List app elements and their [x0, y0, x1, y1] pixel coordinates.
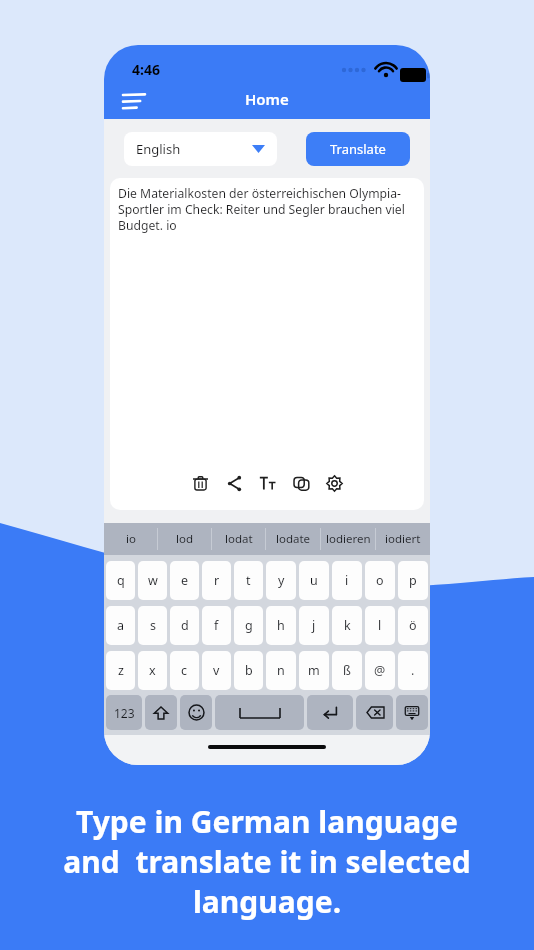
staticText: i [345, 572, 349, 589]
staticText: z [118, 662, 124, 679]
staticText: w [148, 572, 158, 589]
button[interactable]: Enter [307, 695, 353, 730]
button[interactable]: f [202, 606, 231, 645]
button[interactable]: l [365, 606, 395, 645]
staticText: 4:46 [132, 60, 160, 79]
staticText: Type in German language and translate it… [63, 801, 471, 922]
staticText: e [181, 572, 189, 589]
button[interactable]: z [106, 651, 135, 690]
button[interactable]: iodiert [376, 523, 430, 555]
button[interactable]: c [170, 651, 199, 690]
staticText: a [117, 617, 125, 634]
button[interactable]: . [398, 651, 428, 690]
button[interactable]: 123 [106, 695, 142, 730]
staticText: d [181, 617, 189, 634]
staticText: Translate [330, 140, 386, 158]
button[interactable]: Hide keyboard [396, 695, 428, 730]
button[interactable]: Translate [306, 132, 410, 166]
staticText: ö [409, 617, 417, 634]
staticText: c [181, 662, 188, 679]
staticText: ß [343, 662, 351, 679]
button[interactable]: p [398, 561, 428, 600]
staticText: p [409, 572, 417, 589]
button[interactable]: Delete [187, 470, 213, 496]
staticText: English [136, 140, 181, 158]
button[interactable]: d [170, 606, 199, 645]
button[interactable]: ö [398, 606, 428, 645]
button[interactable]: e [170, 561, 199, 600]
staticText: l [378, 617, 382, 634]
staticText: v [213, 662, 220, 679]
staticText: r [214, 572, 220, 589]
button[interactable]: Shift [145, 695, 177, 730]
button[interactable]: s [138, 606, 167, 645]
button[interactable]: Share [221, 470, 247, 496]
staticText: lodate [276, 531, 311, 547]
button[interactable]: Backspace [356, 695, 393, 730]
staticText: lodieren [326, 531, 371, 547]
button[interactable]: v [202, 651, 231, 690]
staticText: q [117, 572, 125, 589]
staticText: x [149, 662, 156, 679]
button[interactable]: i [332, 561, 362, 600]
staticText: o [376, 572, 384, 589]
button[interactable]: b [234, 651, 263, 690]
staticText: h [277, 617, 285, 634]
staticText: f [214, 617, 219, 634]
button[interactable]: o [365, 561, 395, 600]
button[interactable]: j [299, 606, 329, 645]
button[interactable]: Space [215, 695, 304, 730]
button[interactable]: English [124, 132, 277, 166]
staticText: lodat [225, 531, 253, 547]
button[interactable]: Menu [114, 85, 154, 117]
staticText: m [308, 662, 320, 679]
button[interactable]: y [266, 561, 296, 600]
staticText: g [245, 617, 253, 634]
staticText: iodiert [385, 531, 421, 547]
button[interactable]: g [234, 606, 263, 645]
button[interactable]: Emoji [180, 695, 212, 730]
staticText: @ [374, 662, 386, 679]
button[interactable]: m [299, 651, 329, 690]
button[interactable]: h [266, 606, 296, 645]
staticText: Home [245, 89, 289, 109]
staticText: n [277, 662, 285, 679]
button[interactable]: x [138, 651, 167, 690]
button[interactable]: lodate [266, 523, 320, 555]
button[interactable]: @ [365, 651, 395, 690]
staticText: j [312, 617, 316, 634]
button[interactable]: k [332, 606, 362, 645]
staticText: u [310, 572, 318, 589]
staticText: io [126, 531, 136, 547]
staticText: s [150, 617, 156, 634]
button[interactable]: lodieren [321, 523, 375, 555]
button[interactable]: ß [332, 651, 362, 690]
button[interactable]: Settings [321, 470, 347, 496]
button[interactable]: w [138, 561, 167, 600]
staticText: b [245, 662, 253, 679]
button[interactable]: u [299, 561, 329, 600]
staticText: y [278, 572, 285, 589]
button[interactable]: Text size [254, 470, 280, 496]
button[interactable]: r [202, 561, 231, 600]
staticText: . [411, 662, 415, 679]
button[interactable]: lod [158, 523, 211, 555]
staticText: lod [176, 531, 193, 547]
staticText: Die Materialkosten der österreichischen … [118, 185, 416, 233]
staticText: k [344, 617, 351, 634]
button[interactable]: n [266, 651, 296, 690]
button[interactable]: io [104, 523, 157, 555]
button[interactable]: lodat [212, 523, 265, 555]
button[interactable]: t [234, 561, 263, 600]
staticText: 123 [114, 705, 135, 721]
button[interactable]: q [106, 561, 135, 600]
staticText: t [246, 572, 251, 589]
button[interactable]: Copy [288, 470, 314, 496]
button[interactable]: a [106, 606, 135, 645]
